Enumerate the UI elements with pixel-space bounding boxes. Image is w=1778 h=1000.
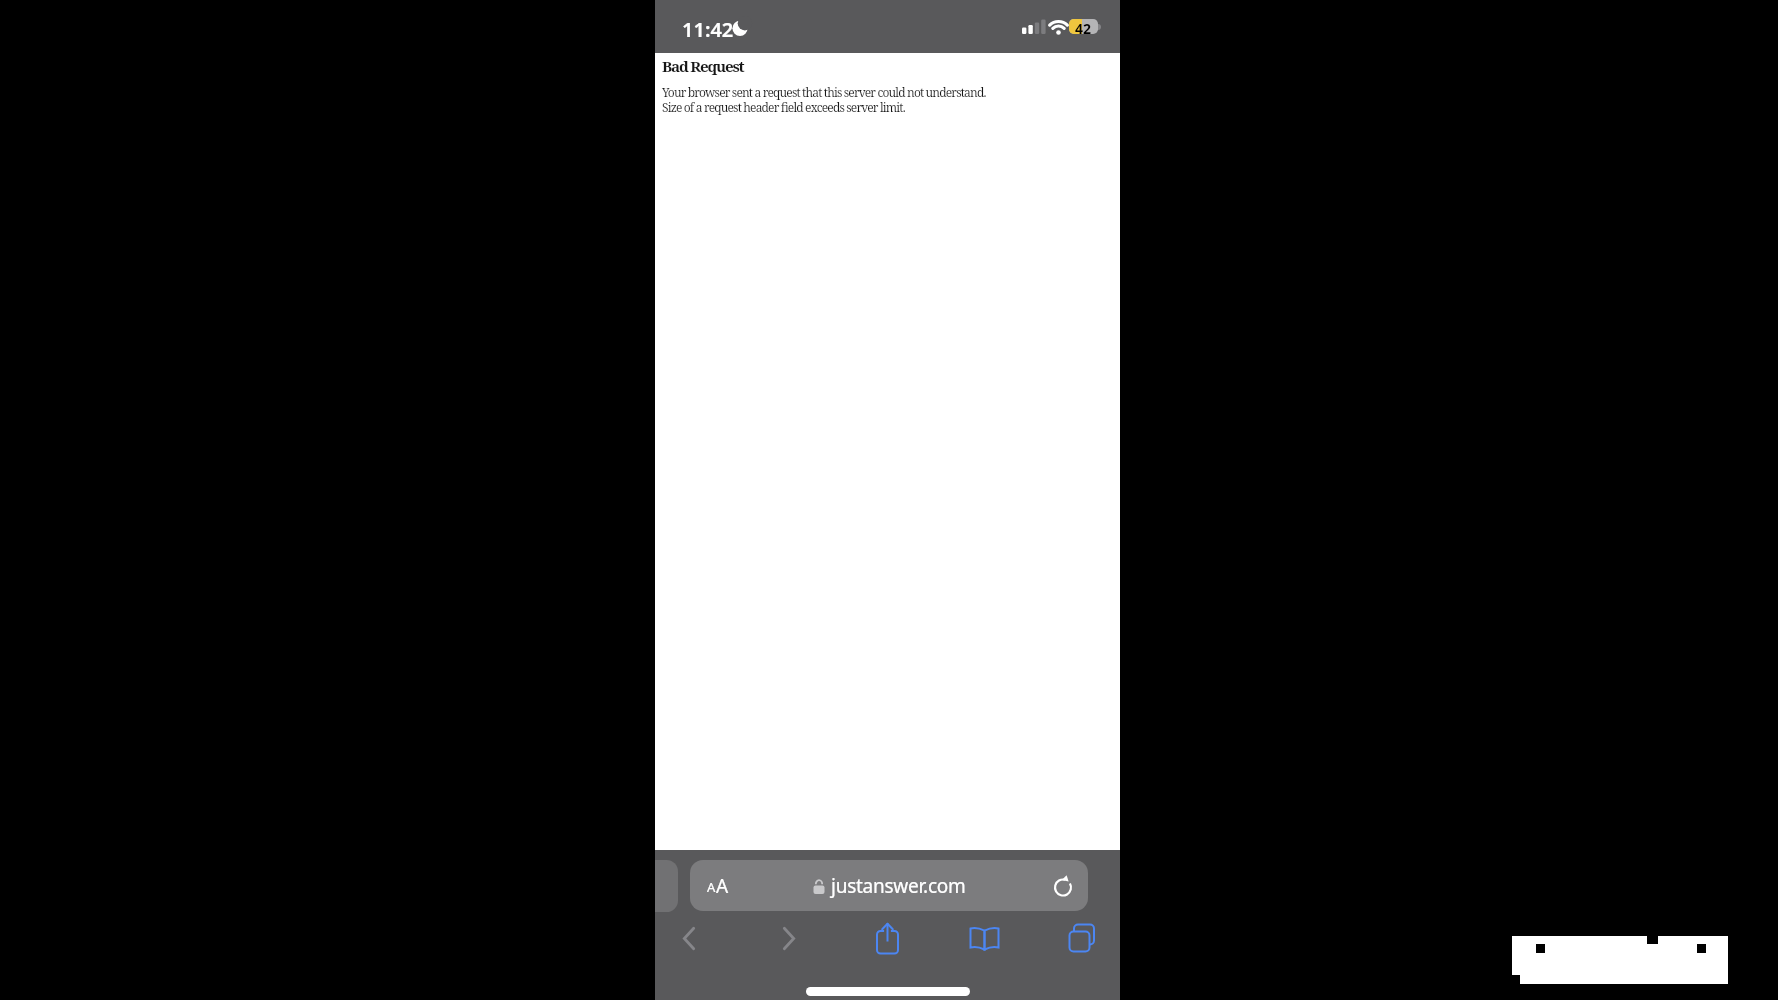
button[interactable]	[669, 918, 709, 958]
button[interactable]	[867, 918, 907, 958]
staticText: justanswer.com	[831, 873, 966, 899]
staticText: A	[707, 878, 716, 896]
staticText: A	[716, 873, 729, 899]
button[interactable]	[964, 918, 1004, 958]
button[interactable]	[707, 860, 733, 911]
button[interactable]: A	[690, 860, 1088, 911]
staticText: 42	[1075, 19, 1092, 34]
button[interactable]	[655, 860, 678, 912]
button[interactable]	[769, 918, 809, 958]
staticText: Bad Request	[662, 56, 744, 77]
button[interactable]	[1059, 918, 1099, 958]
staticText: 11:42	[682, 16, 734, 43]
button[interactable]	[1053, 876, 1074, 897]
staticText: Your browser sent a request that this se…	[662, 84, 986, 116]
